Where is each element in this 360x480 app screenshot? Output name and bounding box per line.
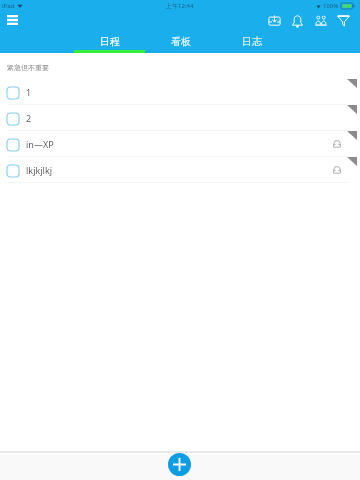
staticText: 1 bbox=[26, 86, 32, 98]
staticText: 上午12:44 bbox=[166, 2, 194, 10]
button[interactable]: Complete 2 bbox=[0, 105, 360, 131]
button[interactable]: Complete 1 bbox=[0, 79, 360, 105]
staticText: 紧急但不重要 bbox=[7, 63, 49, 72]
button[interactable]: Complete lkjkjlkj bbox=[0, 157, 360, 183]
staticText: lkjkjlkj bbox=[26, 164, 53, 176]
button[interactable]: 看板 bbox=[145, 29, 216, 53]
staticText: 日程 bbox=[100, 35, 120, 48]
button[interactable]: Complete in—XP bbox=[0, 131, 360, 157]
staticText: 看板 bbox=[171, 35, 191, 48]
staticText: in—XP bbox=[26, 138, 54, 150]
button[interactable]: Add bbox=[168, 453, 191, 476]
button[interactable]: Complete in—XP bbox=[6, 138, 19, 151]
button[interactable]: Members bbox=[309, 12, 332, 29]
staticText: iPad bbox=[2, 2, 15, 10]
staticText: 100% bbox=[323, 2, 339, 10]
button[interactable]: Complete 2 bbox=[6, 112, 19, 125]
button[interactable]: Complete lkjkjlkj bbox=[6, 164, 19, 177]
button[interactable]: Notifications bbox=[286, 12, 309, 29]
button[interactable]: Complete 1 bbox=[6, 86, 19, 99]
button[interactable]: 日志 bbox=[216, 29, 287, 53]
staticText: 日志 bbox=[242, 35, 262, 48]
button[interactable]: Inbox bbox=[263, 12, 286, 29]
button[interactable]: Menu bbox=[2, 12, 23, 29]
button[interactable]: Filter bbox=[332, 12, 355, 29]
staticText: 2 bbox=[26, 112, 32, 124]
button[interactable]: 日程 bbox=[74, 29, 145, 53]
